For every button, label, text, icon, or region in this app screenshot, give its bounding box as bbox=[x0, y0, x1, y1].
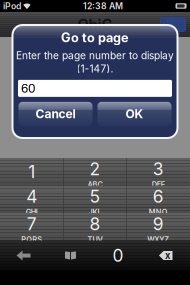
staticText: 6 bbox=[153, 186, 164, 207]
button[interactable]: Delete bbox=[142, 240, 190, 270]
staticText: Go to page bbox=[61, 30, 129, 45]
button[interactable]: 1 bbox=[0, 158, 63, 185]
staticText: TUV bbox=[87, 235, 102, 244]
staticText: ABC bbox=[87, 180, 102, 189]
staticText: 60 bbox=[21, 81, 36, 96]
staticText: 8 bbox=[89, 214, 100, 235]
staticText: Page bbox=[161, 18, 185, 31]
staticText: PQRS bbox=[21, 235, 42, 244]
staticText: WXYZ bbox=[147, 235, 169, 244]
staticText: 9 bbox=[153, 214, 164, 235]
button[interactable]: 9 bbox=[127, 213, 190, 240]
staticText: MNO bbox=[149, 207, 168, 216]
staticText: 5 bbox=[89, 186, 100, 207]
staticText: 12:38 AM bbox=[83, 1, 123, 11]
staticText: 2 bbox=[89, 159, 100, 180]
staticText: 3 bbox=[153, 159, 164, 180]
staticText: OK bbox=[125, 107, 143, 121]
staticText: 1 bbox=[28, 161, 35, 182]
button[interactable]: 0 bbox=[94, 240, 142, 270]
staticText: iPod bbox=[3, 1, 21, 11]
staticText: DEF bbox=[152, 180, 165, 189]
button[interactable]: Bookmarks bbox=[47, 240, 94, 270]
button[interactable]: 8 bbox=[63, 213, 127, 240]
staticText: x bbox=[165, 250, 170, 261]
button[interactable]: 7 bbox=[0, 213, 63, 240]
staticText: Cancel bbox=[35, 107, 75, 121]
staticText: 0 bbox=[112, 245, 123, 266]
staticText: JKL bbox=[88, 207, 101, 216]
staticText: GHI bbox=[26, 207, 38, 216]
staticText: Enter the page number to display bbox=[16, 49, 174, 62]
button[interactable]: Previous page bbox=[0, 240, 47, 270]
button[interactable]: 4 bbox=[0, 185, 63, 213]
button[interactable]: 6 bbox=[127, 185, 190, 213]
button[interactable]: OK bbox=[97, 102, 171, 126]
button[interactable]: 3 bbox=[127, 158, 190, 185]
staticText: QbiC bbox=[77, 16, 112, 33]
button[interactable]: Cancel bbox=[18, 102, 92, 126]
button[interactable]: 2 bbox=[63, 158, 127, 185]
staticText: 4 bbox=[26, 186, 37, 207]
staticText: (1-147). bbox=[76, 63, 113, 75]
staticText: 7 bbox=[27, 214, 37, 235]
button[interactable]: 5 bbox=[63, 185, 127, 213]
button[interactable]: Page bbox=[160, 17, 186, 32]
